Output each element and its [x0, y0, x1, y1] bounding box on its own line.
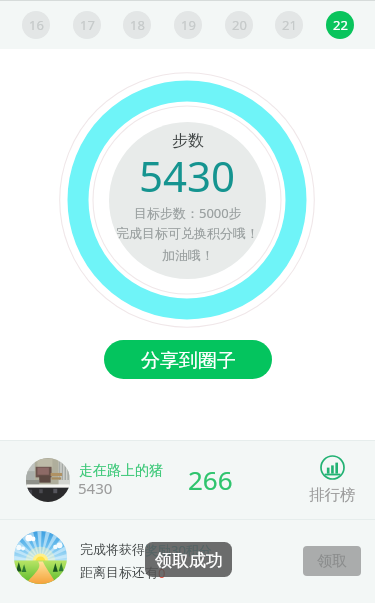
staticText: 排行榜 [309, 485, 356, 505]
staticText: 19 [181, 16, 196, 34]
staticText: 0 [158, 564, 166, 582]
staticText: 加油哦！ [162, 247, 214, 263]
staticText: 分享到圈子 [141, 349, 236, 373]
staticText: 22 [333, 16, 348, 34]
staticText: 16 [29, 16, 44, 34]
button[interactable]: 排行榜 [303, 449, 361, 511]
staticText: 目标步数：5000步 [134, 204, 242, 222]
staticText: 20 [232, 16, 247, 34]
button[interactable]: 17 [73, 11, 101, 39]
staticText: 奖励30积分 [145, 541, 212, 559]
button[interactable]: 走在路上的猪 [0, 441, 375, 519]
button[interactable]: 18 [123, 11, 151, 39]
staticText: 5430 [139, 147, 236, 204]
button[interactable]: 领取 [303, 546, 361, 576]
staticText: 17 [80, 16, 95, 34]
staticText: 步数 [172, 131, 204, 151]
button[interactable]: 21 [275, 11, 303, 39]
staticText: 266 [188, 462, 233, 497]
staticText: 21 [282, 16, 297, 34]
button[interactable]: 22 [326, 11, 354, 39]
staticText: 领取成功 [155, 550, 223, 571]
button[interactable]: 16 [22, 11, 50, 39]
button[interactable]: 分享到圈子 [104, 340, 272, 379]
staticText: 领取 [317, 552, 347, 571]
staticText: 5430 [78, 478, 113, 498]
staticText: 走在路上的猪 [79, 462, 163, 480]
staticText: 完成将获得 [80, 541, 145, 557]
staticText: 距离目标还有 [80, 564, 158, 580]
button[interactable]: 20 [225, 11, 253, 39]
staticText: 完成目标可兑换积分哦！ [116, 225, 259, 241]
button[interactable]: 19 [174, 11, 202, 39]
staticText: 18 [130, 16, 145, 34]
